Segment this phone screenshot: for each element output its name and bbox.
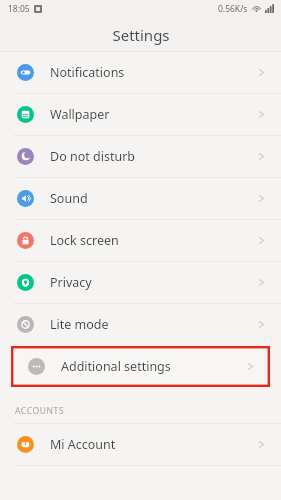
staticText: Wallpaper: [50, 106, 110, 123]
staticText: Mi Account: [50, 436, 116, 453]
staticText: 0.56K/s: [218, 3, 248, 15]
button[interactable]: Privacy: [0, 262, 281, 303]
button[interactable]: Notifications: [0, 52, 281, 93]
button[interactable]: Sound: [0, 178, 281, 219]
staticText: Sound: [50, 190, 88, 207]
staticText: 18:05: [8, 3, 30, 15]
staticText: Settings: [112, 25, 170, 45]
staticText: Lite mode: [50, 316, 109, 333]
button[interactable]: Lock screen: [0, 220, 281, 261]
staticText: ACCOUNTS: [15, 405, 65, 417]
staticText: Privacy: [50, 274, 92, 291]
button[interactable]: Wallpaper: [0, 94, 281, 135]
staticText: Lock screen: [50, 232, 119, 249]
staticText: Do not disturb: [50, 148, 135, 165]
staticText: Additional settings: [61, 358, 171, 375]
staticText: Notifications: [50, 64, 125, 81]
button[interactable]: Do not disturb: [0, 136, 281, 177]
button[interactable]: Lite mode: [0, 304, 281, 345]
button[interactable]: Mi Account: [0, 424, 281, 465]
